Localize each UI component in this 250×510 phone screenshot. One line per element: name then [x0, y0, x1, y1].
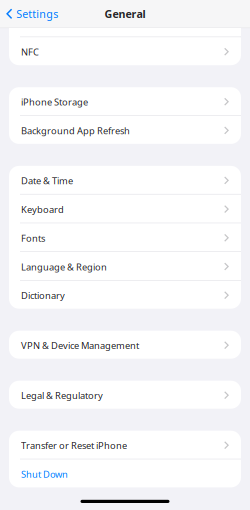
staticText: VPN & Device Management: [21, 339, 139, 352]
staticText: Shut Down: [21, 468, 68, 480]
staticText: Fonts: [21, 232, 45, 244]
staticText: Language & Region: [21, 261, 107, 273]
staticText: iPhone Storage: [21, 96, 88, 108]
button[interactable]: Date & Time: [9, 166, 241, 194]
button[interactable]: Fonts: [9, 223, 241, 251]
button[interactable]: NFC: [9, 37, 241, 65]
button[interactable]: iPhone Storage: [9, 87, 241, 115]
staticText: Legal & Regulatory: [21, 389, 103, 402]
button[interactable]: Transfer or Reset iPhone: [9, 431, 241, 459]
staticText: General: [104, 7, 145, 21]
staticText: Settings: [16, 7, 58, 21]
button[interactable]: Keyboard: [9, 195, 241, 223]
button[interactable]: Legal & Regulatory: [9, 381, 241, 409]
button[interactable]: Dictionary: [9, 281, 241, 309]
staticText: Date & Time: [21, 174, 73, 187]
staticText: Transfer or Reset iPhone: [21, 439, 127, 452]
staticText: Keyboard: [21, 203, 64, 216]
staticText: NFC: [21, 46, 39, 58]
staticText: Dictionary: [21, 289, 65, 302]
button[interactable]: VPN & Device Management: [9, 331, 241, 359]
button[interactable]: Background App Refresh: [9, 116, 241, 144]
button[interactable]: Settings: [0, 0, 62, 28]
button[interactable]: Shut Down: [9, 459, 241, 487]
staticText: Background App Refresh: [21, 124, 130, 137]
button[interactable]: Language & Region: [9, 252, 241, 280]
